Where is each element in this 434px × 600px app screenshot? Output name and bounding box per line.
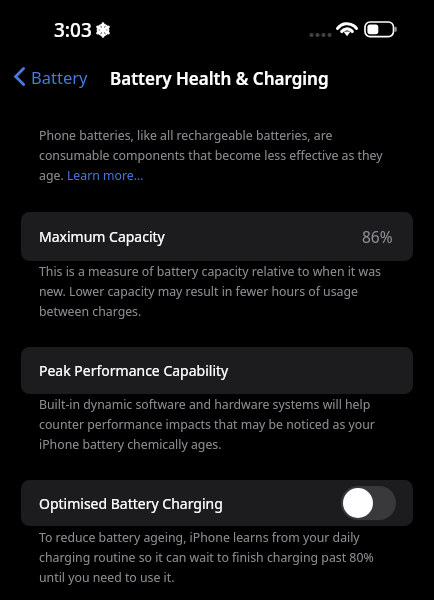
button[interactable]: Learn more [64,167,142,185]
staticText: To reduce battery ageing, iPhone learns … [39,529,387,585]
button[interactable]: Peak Performance Capability [21,347,413,394]
staticText: Built-in dynamic software and hardware s… [39,396,387,452]
staticText: Battery Health & Charging [110,67,329,90]
staticText: Maximum Capacity [39,227,165,246]
staticText: 86% [362,226,393,247]
staticText: Optimised Battery Charging [39,494,223,513]
button[interactable]: Back to Battery [6,60,96,93]
staticText: This is a measure of battery capacity re… [39,263,387,319]
button[interactable]: Optimised Battery Charging toggle [341,486,396,520]
button[interactable]: Optimised Battery Charging [21,480,413,526]
staticText: 3:03 [54,17,92,43]
staticText: Peak Performance Capability [39,361,229,380]
staticText: Phone batteries, like all rechargeable b… [39,127,387,183]
staticText: Battery [31,66,88,88]
button[interactable]: Maximum Capacity [21,212,413,261]
